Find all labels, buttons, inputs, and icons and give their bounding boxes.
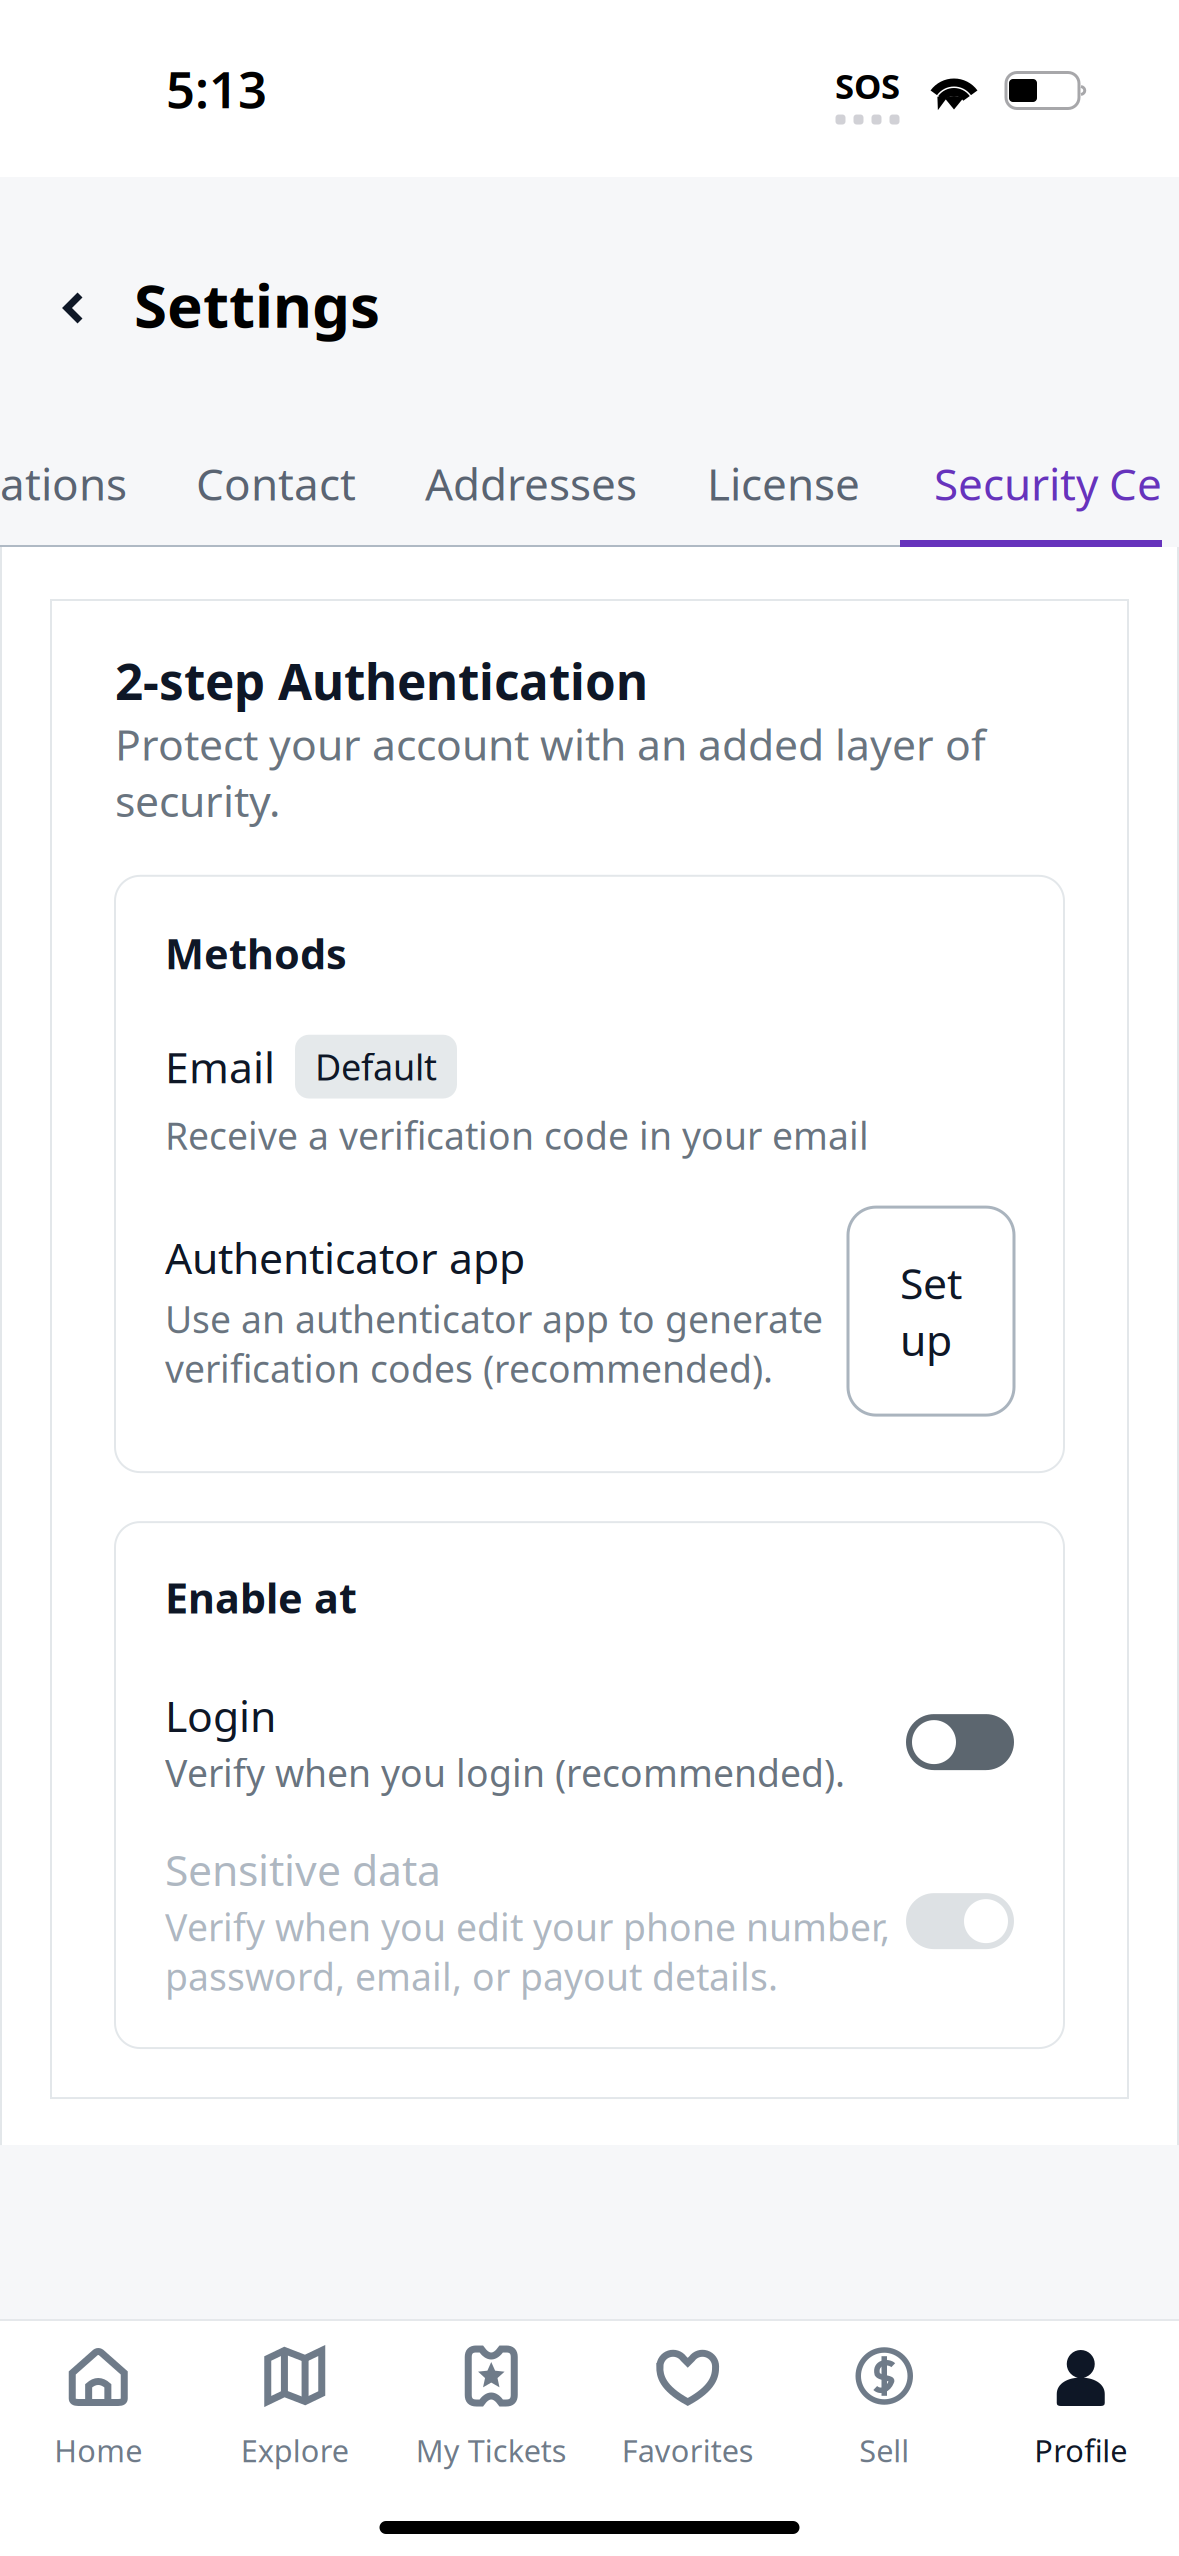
button[interactable]: Security Ce — [900, 420, 1162, 547]
staticText: 5:13 — [166, 55, 267, 122]
button[interactable]: Set up — [848, 1207, 1014, 1415]
staticText: Receive a verification code in your emai… — [165, 1110, 869, 1160]
button[interactable]: Addresses — [393, 420, 675, 547]
staticText: Sell — [859, 2430, 909, 2471]
staticText: Addresses — [425, 454, 637, 513]
staticText: Login — [165, 1687, 276, 1744]
staticText: Profile — [1034, 2430, 1127, 2471]
staticText: License — [707, 454, 860, 513]
button[interactable]: On — [906, 1893, 1014, 1949]
button[interactable]: Home — [0, 2345, 196, 2471]
button[interactable]: Contact — [157, 420, 393, 547]
staticText: Authenticator app — [165, 1229, 525, 1286]
staticText: Verify when you login (recommended). — [165, 1748, 845, 1797]
staticText: Security Ce — [934, 454, 1162, 513]
staticText: Methods — [165, 926, 347, 981]
button[interactable]: Sell — [786, 2345, 982, 2471]
staticText: Email — [165, 1038, 275, 1095]
button[interactable]: Explore — [196, 2345, 393, 2471]
button[interactable]: Profile — [982, 2345, 1179, 2471]
staticText: Home — [54, 2430, 142, 2471]
staticText: SOS — [835, 62, 900, 108]
staticText: Sensitive data — [165, 1841, 441, 1898]
button[interactable]: Back — [0, 177, 134, 420]
button[interactable]: Off — [906, 1714, 1014, 1770]
button[interactable]: License — [675, 420, 900, 547]
staticText: ations — [0, 454, 127, 513]
button[interactable]: Favorites — [589, 2345, 786, 2471]
staticText: 2-step Authentication — [115, 648, 648, 713]
staticText: Favorites — [622, 2430, 754, 2471]
staticText: Settings — [134, 265, 380, 344]
staticText: My Tickets — [416, 2430, 567, 2471]
staticText: Use an authenticator app to generate ver… — [165, 1294, 823, 1393]
staticText: Set up — [900, 1254, 962, 1368]
staticText: Enable at — [165, 1570, 357, 1625]
staticText: Explore — [241, 2430, 349, 2471]
staticText: Verify when you edit your phone number, … — [165, 1902, 890, 2001]
staticText: Contact — [196, 454, 356, 513]
staticText: Default — [315, 1043, 437, 1090]
button[interactable]: My Tickets — [393, 2345, 589, 2471]
button[interactable]: ations — [0, 420, 157, 547]
staticText: Protect your account with an added layer… — [115, 715, 986, 829]
